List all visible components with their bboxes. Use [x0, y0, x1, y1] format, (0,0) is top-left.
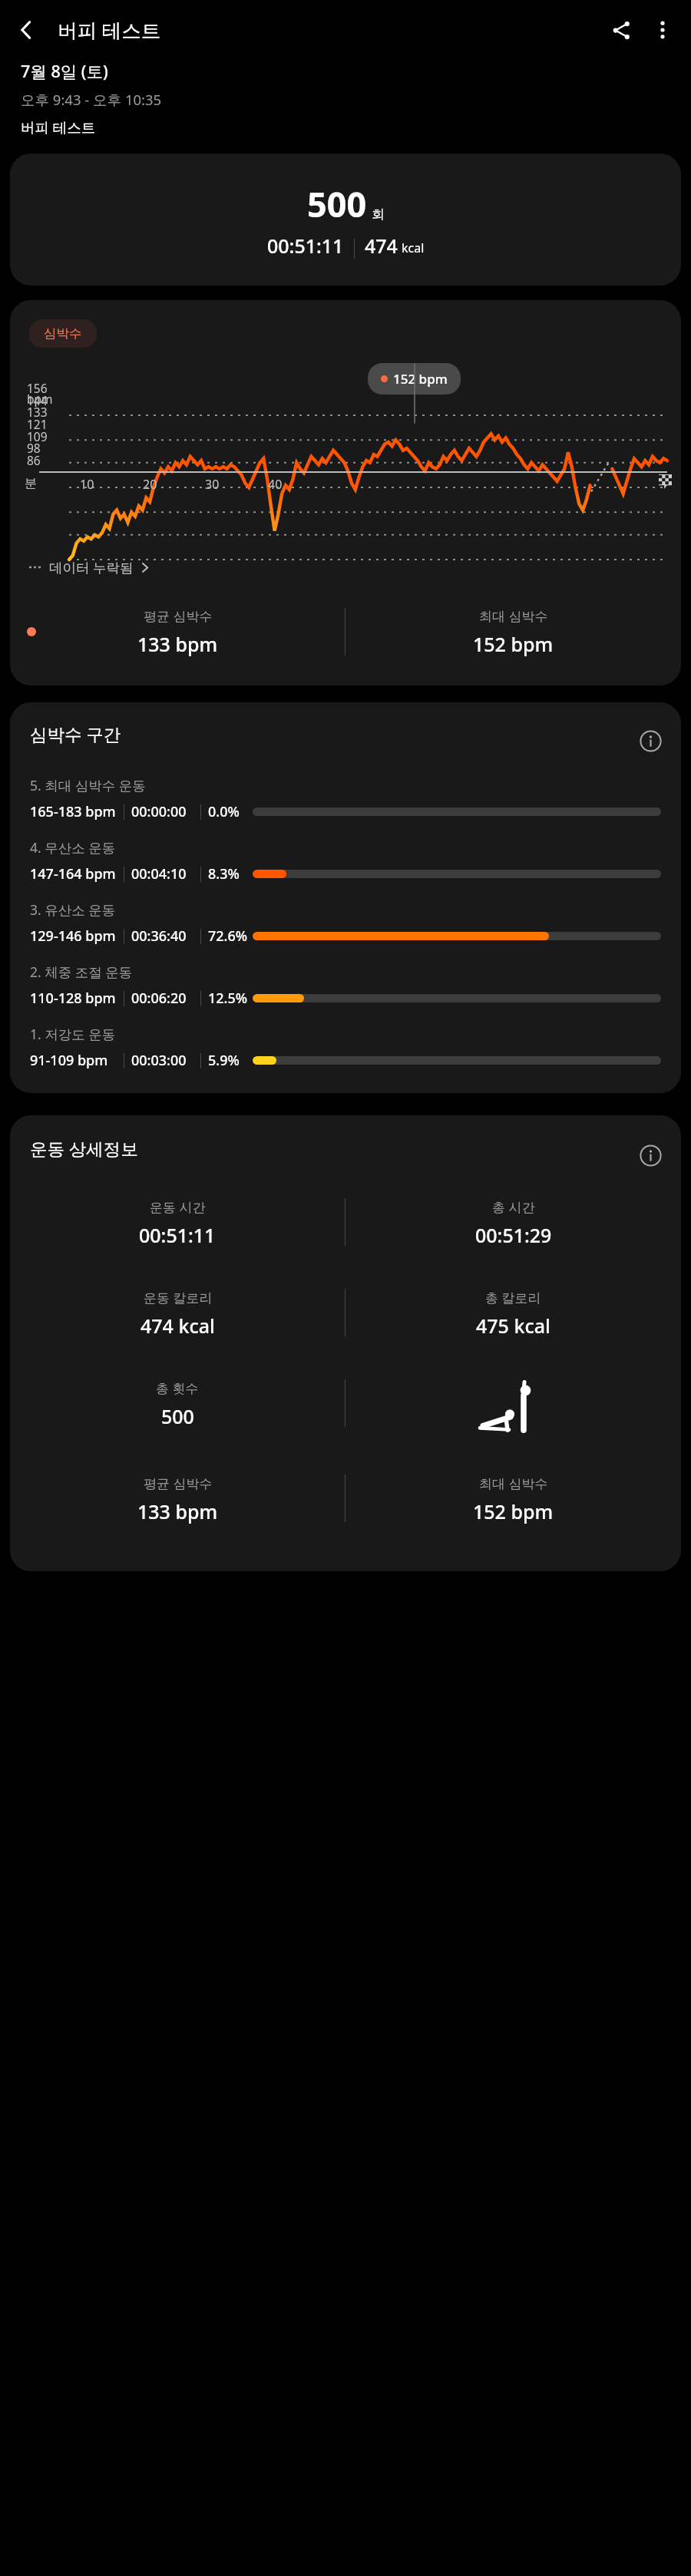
- staticText: 00:36:40: [131, 926, 200, 946]
- staticText: 회: [372, 206, 385, 223]
- button[interactable]: 500: [10, 154, 681, 286]
- staticText: 474: [365, 233, 398, 259]
- staticText: 500: [161, 1403, 194, 1429]
- staticText: 133 bpm: [137, 631, 218, 657]
- staticText: 152 bpm: [473, 631, 554, 657]
- staticText: 총 횟수: [156, 1379, 199, 1397]
- staticText: 00:04:10: [131, 864, 200, 883]
- staticText: 5.9%: [208, 1051, 253, 1070]
- staticText: 평균 심박수: [144, 1475, 213, 1492]
- staticText: 121: [27, 416, 48, 432]
- button[interactable]: 심박수: [10, 300, 681, 685]
- staticText: 98: [27, 440, 41, 456]
- staticText: 72.6%: [208, 926, 253, 946]
- staticText: 152 bpm: [393, 370, 448, 388]
- staticText: 110-128 bpm: [30, 989, 124, 1008]
- staticText: 40: [268, 476, 283, 493]
- staticText: 총 칼로리: [485, 1289, 541, 1306]
- staticText: 운동 칼로리: [144, 1289, 213, 1306]
- button[interactable]: 2. 체중 조절 운동: [10, 963, 681, 1025]
- button[interactable]: Back: [4, 8, 48, 52]
- staticText: 00:51:29: [475, 1222, 552, 1248]
- staticText: 데이터 누락됨: [49, 558, 134, 576]
- staticText: 1. 저강도 운동: [30, 1025, 116, 1043]
- staticText: 165-183 bpm: [30, 802, 124, 821]
- staticText: 총 시간: [492, 1198, 535, 1216]
- staticText: 152 bpm: [473, 1498, 554, 1524]
- staticText: 109: [27, 428, 48, 444]
- staticText: 00:06:20: [131, 989, 200, 1008]
- button[interactable]: 3. 유산소 운동: [10, 900, 681, 963]
- staticText: 144: [27, 392, 48, 408]
- staticText: 0.0%: [208, 802, 253, 821]
- button[interactable]: Share: [599, 8, 643, 52]
- staticText: 10: [80, 476, 94, 493]
- staticText: 129-146 bpm: [30, 926, 124, 946]
- staticText: 4. 무산소 운동: [30, 838, 116, 857]
- button[interactable]: More options: [640, 8, 685, 52]
- staticText: 운동 시간: [150, 1198, 206, 1216]
- staticText: bpm: [27, 391, 53, 407]
- staticText: 2. 체중 조절 운동: [30, 963, 133, 981]
- staticText: 147-164 bpm: [30, 864, 124, 883]
- button[interactable]: Information about exercise details: [632, 1137, 669, 1174]
- staticText: 474 kcal: [141, 1313, 215, 1339]
- staticText: 최대 심박수: [479, 1475, 548, 1492]
- staticText: 30: [205, 476, 220, 493]
- button[interactable]: Information about heart rate zones: [632, 722, 669, 759]
- staticText: 분: [25, 476, 37, 491]
- staticText: 133: [27, 404, 48, 420]
- button[interactable]: 4. 무산소 운동: [10, 838, 681, 900]
- staticText: 버피 테스트: [21, 117, 96, 137]
- staticText: 평균 심박수: [144, 607, 213, 625]
- staticText: 버피 테스트: [58, 17, 161, 44]
- staticText: 91-109 bpm: [30, 1051, 124, 1070]
- staticText: 오후 9:43 - 오후 10:35: [21, 90, 162, 109]
- button[interactable]: 152 bpm: [368, 363, 461, 395]
- staticText: 8.3%: [208, 864, 253, 883]
- staticText: 86: [27, 452, 41, 468]
- button[interactable]: 심박수: [29, 319, 97, 348]
- staticText: 심박수: [44, 325, 82, 342]
- button[interactable]: 1. 저강도 운동: [10, 1025, 681, 1087]
- staticText: 3. 유산소 운동: [30, 900, 116, 919]
- staticText: 5. 최대 심박수 운동: [30, 776, 146, 794]
- staticText: 20: [143, 476, 157, 493]
- button[interactable]: 5. 최대 심박수 운동: [10, 776, 681, 838]
- staticText: 133 bpm: [137, 1498, 218, 1524]
- staticText: 500: [307, 180, 367, 227]
- staticText: 최대 심박수: [479, 607, 548, 625]
- staticText: 156: [27, 380, 48, 396]
- staticText: 00:00:00: [131, 802, 200, 821]
- staticText: 00:51:11: [267, 233, 344, 259]
- staticText: 운동 상세정보: [30, 1137, 138, 1161]
- staticText: 12.5%: [208, 989, 253, 1008]
- staticText: 7월 8일 (토): [21, 60, 108, 82]
- staticText: 심박수 구간: [30, 722, 121, 746]
- staticText: 475 kcal: [476, 1313, 550, 1339]
- other: Burpee exercise: [475, 1379, 552, 1435]
- button[interactable]: 데이터 누락됨: [10, 555, 681, 581]
- staticText: 00:03:00: [131, 1051, 200, 1070]
- staticText: kcal: [402, 239, 425, 256]
- staticText: 00:51:11: [139, 1222, 216, 1248]
